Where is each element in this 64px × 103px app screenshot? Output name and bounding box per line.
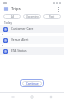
staticText: Customer Care xyxy=(11,27,61,31)
staticText: All xyxy=(11,15,14,19)
button[interactable]: Menu xyxy=(3,6,9,12)
button[interactable]: Back xyxy=(7,93,19,101)
button[interactable]: Continue xyxy=(22,81,42,86)
staticText: Past xyxy=(49,15,55,19)
staticText: ETA Status xyxy=(11,49,61,53)
staticText: Trips xyxy=(11,6,21,12)
staticText: Continue xyxy=(26,82,39,86)
button[interactable]: Past xyxy=(43,14,61,19)
button[interactable]: ETA Status xyxy=(0,47,64,55)
button[interactable]: More options xyxy=(55,6,61,12)
button[interactable]: Upcoming xyxy=(23,14,41,19)
button[interactable]: Customer Care xyxy=(0,25,64,33)
staticText: Today xyxy=(4,21,12,25)
button[interactable]: Recents xyxy=(45,93,57,101)
button[interactable]: Home xyxy=(26,93,38,101)
staticText: Upcoming xyxy=(26,15,39,19)
staticText: Venue Alert xyxy=(11,38,61,42)
button[interactable]: All xyxy=(3,14,21,19)
button[interactable]: Venue Alert xyxy=(0,36,64,44)
